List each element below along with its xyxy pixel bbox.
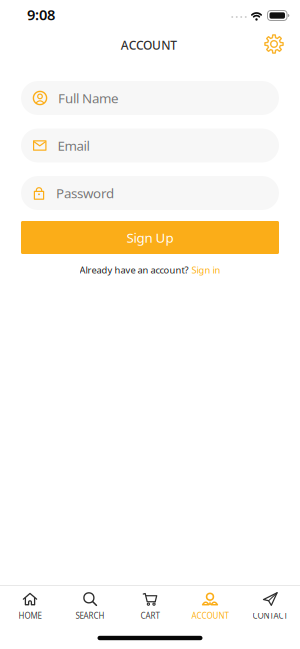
staticText: ACCOUNT xyxy=(191,610,228,621)
button[interactable]: Settings xyxy=(264,34,283,53)
staticText: 9:08 xyxy=(27,5,55,24)
staticText: Password xyxy=(56,184,114,202)
staticText: CART xyxy=(140,610,159,621)
button[interactable]: ACCOUNT xyxy=(180,592,240,621)
button[interactable]: Email xyxy=(21,128,279,162)
button[interactable]: HOME xyxy=(0,592,60,621)
staticText: Sign in xyxy=(191,264,220,276)
button[interactable]: Sign Up xyxy=(21,221,279,254)
staticText: Email xyxy=(57,137,89,154)
button[interactable]: CART xyxy=(120,592,180,621)
staticText: CONTACT xyxy=(252,610,287,621)
staticText: HOME xyxy=(18,610,41,621)
staticText: Sign Up xyxy=(126,229,173,246)
button[interactable]: Sign in xyxy=(191,264,220,276)
button[interactable]: Password xyxy=(21,176,279,210)
staticText: ACCOUNT xyxy=(121,37,177,53)
button[interactable]: SEARCH xyxy=(60,592,120,621)
button[interactable]: Full Name xyxy=(21,81,279,115)
staticText: SEARCH xyxy=(75,610,104,621)
button[interactable]: CONTACT xyxy=(240,592,300,621)
staticText: Full Name xyxy=(58,89,119,107)
staticText: Already have an account? xyxy=(79,264,188,276)
